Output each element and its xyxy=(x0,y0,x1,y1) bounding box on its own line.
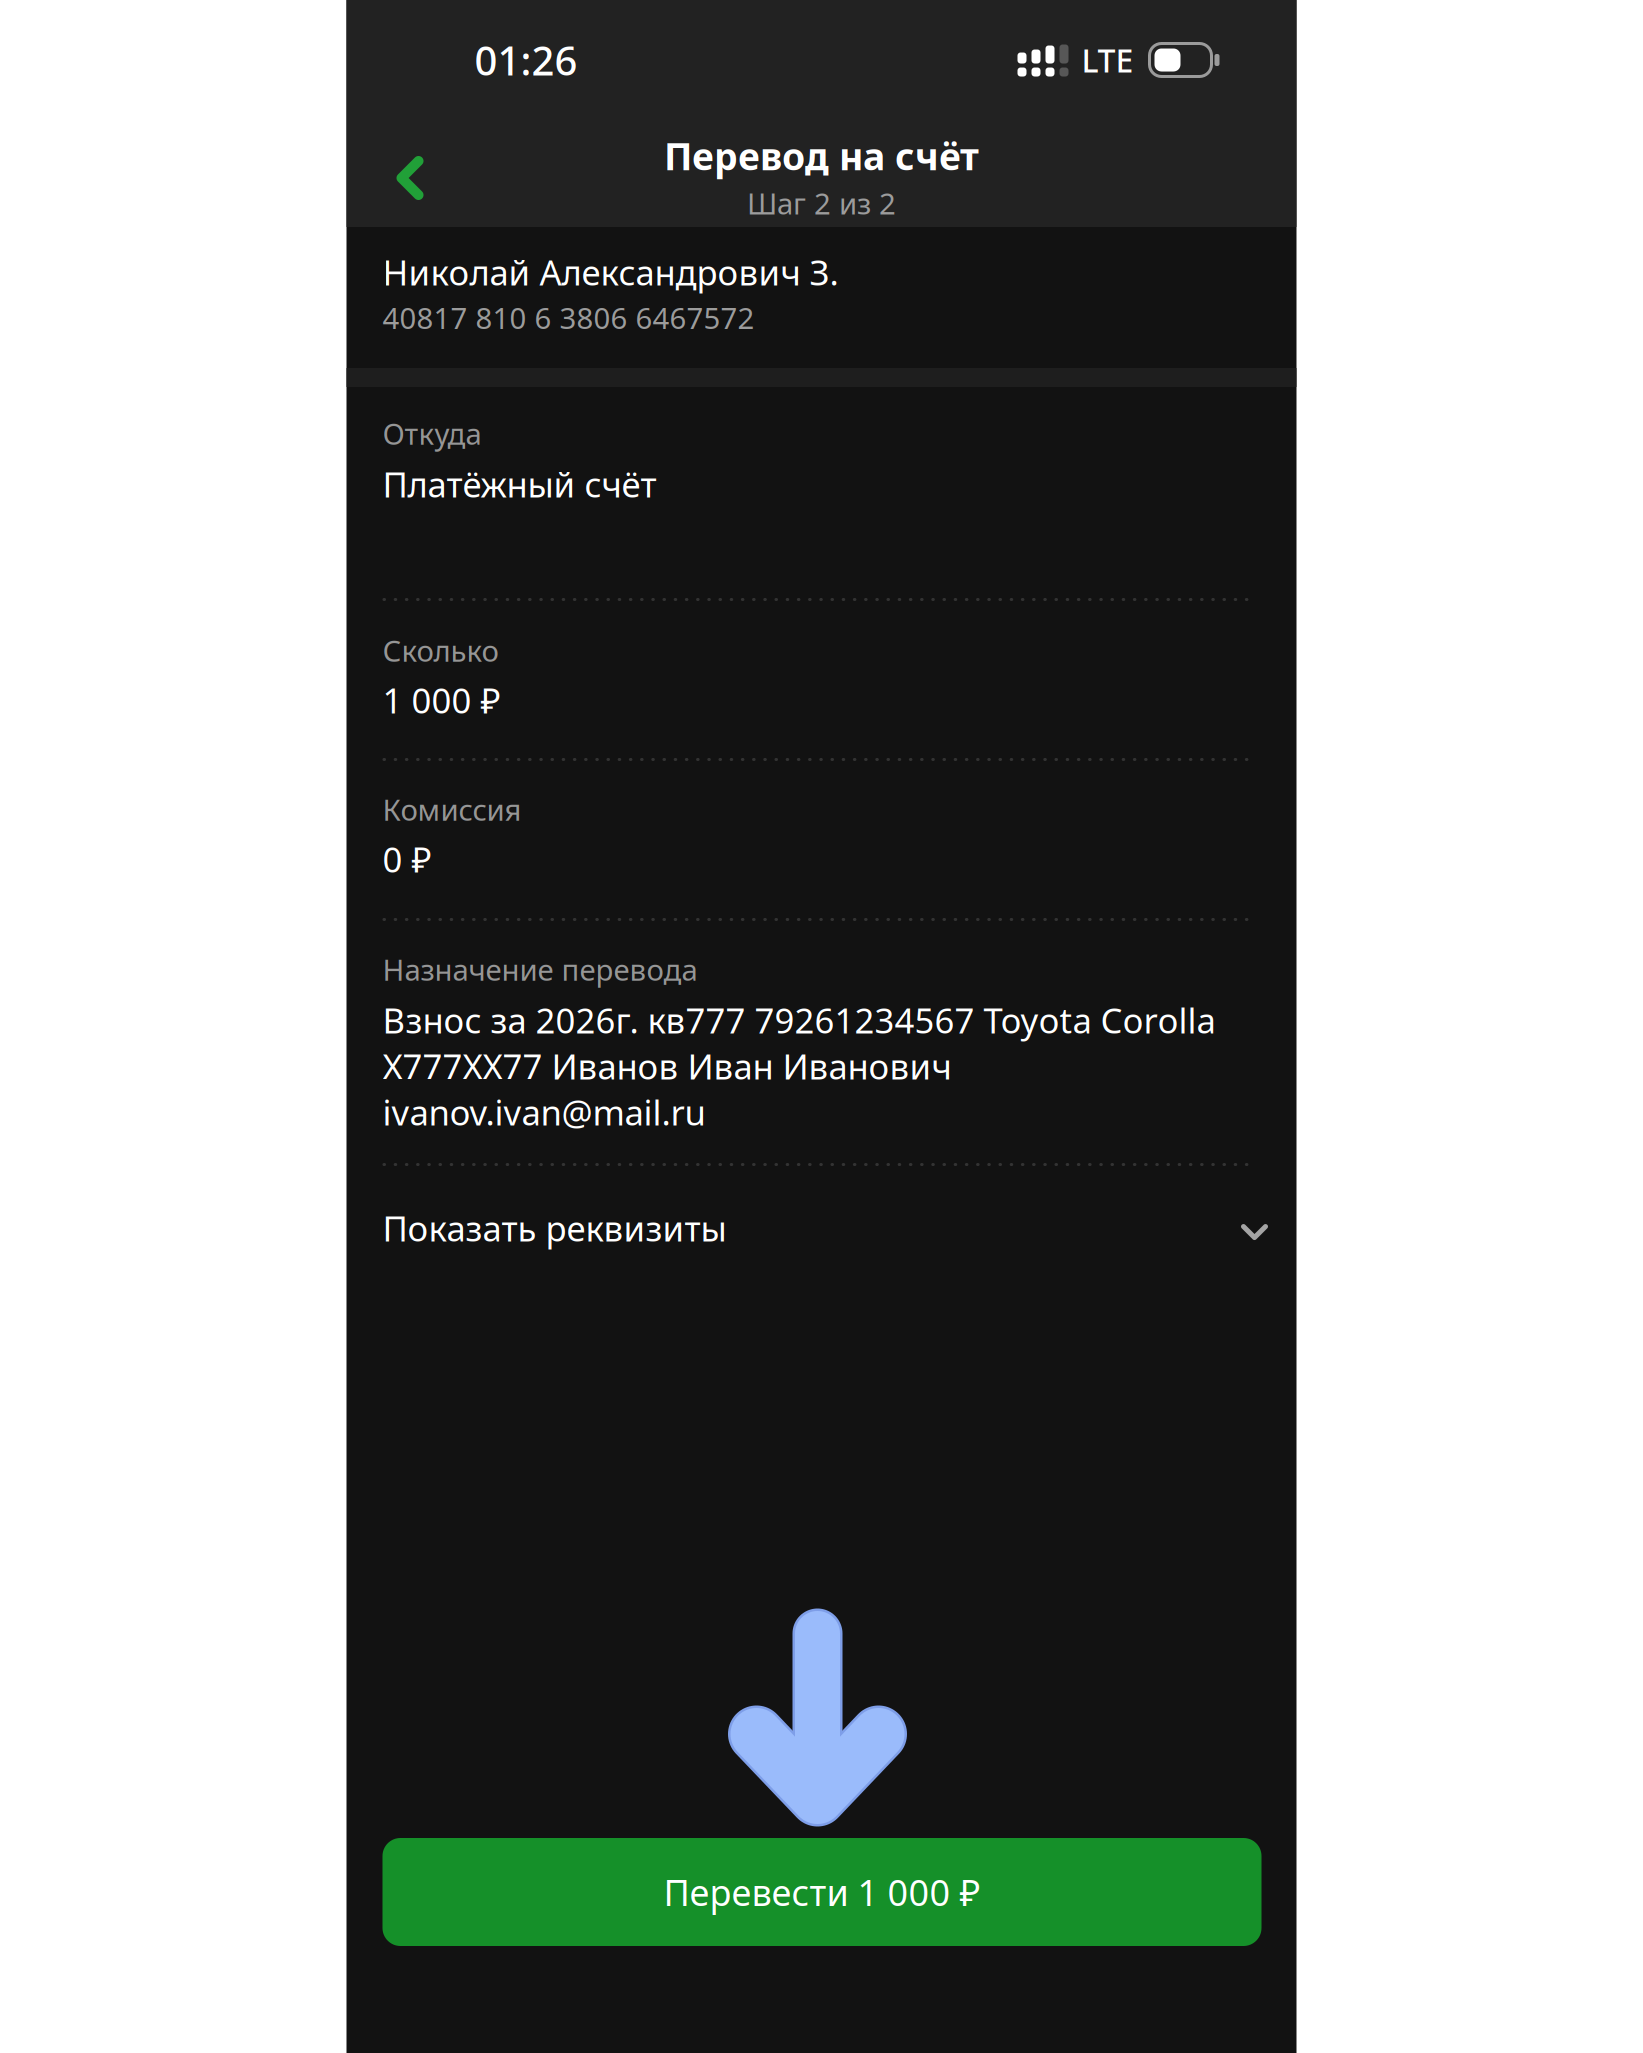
staticText: Платёжный счёт xyxy=(382,461,656,507)
staticText: Сколько xyxy=(382,631,498,670)
staticText: Комиссия xyxy=(382,790,521,829)
staticText: Показать реквизиты xyxy=(382,1205,726,1251)
staticText: Николай Александрович З. xyxy=(382,249,838,295)
staticText: Взнос за 2026г. кв777 79261234567 Toyota… xyxy=(382,997,1215,1043)
button[interactable]: Назад xyxy=(346,120,496,227)
staticText: X777XX77 Иванов Иван Иванович xyxy=(382,1043,951,1089)
staticText: 0 ₽ xyxy=(382,836,431,882)
staticText: 1 000 ₽ xyxy=(382,677,500,723)
staticText: 40817 810 6 3806 6467572 xyxy=(382,298,754,337)
button[interactable]: Перевести 1 000 ₽ xyxy=(382,1838,1261,1946)
staticText: 01:26 xyxy=(474,33,577,86)
staticText: Шаг 2 из 2 xyxy=(747,184,896,223)
staticText: Откуда xyxy=(382,414,481,453)
staticText: Перевести 1 000 ₽ xyxy=(663,1868,980,1916)
staticText: Назначение перевода xyxy=(382,950,697,989)
staticText: ivanov.ivan@mail.ru xyxy=(382,1089,705,1135)
staticText: LTE xyxy=(1081,39,1133,81)
button[interactable]: Показать реквизиты xyxy=(382,1166,1260,1290)
staticText: Перевод на счёт xyxy=(664,131,979,181)
